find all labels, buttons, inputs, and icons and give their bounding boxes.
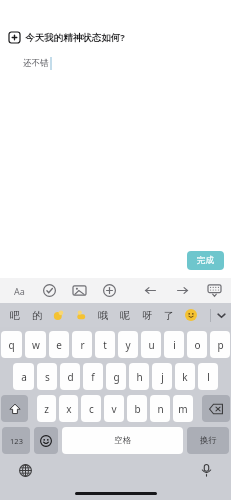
- button[interactable]: z: [37, 395, 56, 422]
- button[interactable]: Undo: [142, 282, 159, 299]
- staticText: 完成: [197, 255, 214, 266]
- button[interactable]: 呢: [114, 303, 136, 327]
- button[interactable]: p: [210, 331, 230, 358]
- button[interactable]: r: [72, 331, 92, 358]
- staticText: g: [113, 370, 120, 384]
- staticText: f: [91, 370, 95, 384]
- button[interactable]: Backspace: [202, 395, 230, 422]
- button[interactable]: m: [173, 395, 193, 422]
- staticText: c: [89, 402, 94, 416]
- staticText: 了: [164, 309, 174, 322]
- button[interactable]: d: [60, 363, 80, 390]
- button[interactable]: h: [129, 363, 149, 390]
- button[interactable]: t: [95, 331, 115, 358]
- button[interactable]: g: [106, 363, 126, 390]
- button[interactable]: b: [127, 395, 147, 422]
- button[interactable]: Prompt: [9, 31, 231, 44]
- staticText: s: [45, 370, 50, 384]
- button[interactable]: l: [198, 363, 218, 390]
- staticText: y: [125, 338, 131, 352]
- staticText: 空格: [114, 435, 131, 446]
- staticText: b: [134, 402, 141, 416]
- button[interactable]: Hide keyboard: [206, 282, 223, 299]
- staticText: x: [66, 402, 72, 416]
- staticText: 哦: [98, 309, 108, 322]
- staticText: a: [21, 370, 27, 384]
- staticText: e: [56, 338, 62, 352]
- staticText: 呢: [120, 309, 130, 322]
- button[interactable]: w: [25, 331, 46, 358]
- button[interactable]: 空格: [62, 427, 183, 454]
- staticText: 呀: [142, 309, 152, 322]
- button[interactable]: u: [141, 331, 161, 358]
- button[interactable]: f: [83, 363, 103, 390]
- button[interactable]: v: [104, 395, 124, 422]
- staticText: 换行: [200, 435, 217, 446]
- button[interactable]: OK hand: [48, 303, 70, 327]
- button[interactable]: k: [175, 363, 195, 390]
- staticText: p: [217, 338, 224, 352]
- button[interactable]: Collapse suggestions: [211, 303, 231, 327]
- button[interactable]: j: [152, 363, 172, 390]
- button[interactable]: 了: [158, 303, 180, 327]
- staticText: 还不错: [23, 58, 49, 69]
- button[interactable]: x: [59, 395, 78, 422]
- staticText: d: [67, 370, 74, 384]
- staticText: 123: [10, 436, 23, 446]
- button[interactable]: n: [150, 395, 170, 422]
- staticText: v: [111, 402, 117, 416]
- button[interactable]: Emoji: [34, 427, 58, 454]
- button[interactable]: c: [81, 395, 101, 422]
- button[interactable]: Change language: [15, 460, 35, 480]
- staticText: i: [173, 338, 176, 352]
- staticText: h: [136, 370, 143, 384]
- button[interactable]: 123: [2, 427, 30, 454]
- staticText: n: [157, 402, 164, 416]
- staticText: l: [207, 370, 210, 384]
- staticText: q: [8, 338, 15, 352]
- button[interactable]: a: [13, 363, 34, 390]
- staticText: o: [194, 338, 201, 352]
- button[interactable]: Shift: [1, 395, 28, 422]
- button[interactable]: Voice input: [196, 460, 216, 480]
- button[interactable]: s: [37, 363, 57, 390]
- button[interactable]: y: [118, 331, 138, 358]
- button[interactable]: 换行: [187, 427, 229, 454]
- button[interactable]: Add attachment: [101, 282, 118, 299]
- other: Prompt: [9, 32, 20, 43]
- staticText: t: [103, 338, 107, 352]
- staticText: r: [80, 338, 85, 352]
- button[interactable]: Smiley: [180, 303, 202, 327]
- button[interactable]: i: [164, 331, 184, 358]
- button[interactable]: 还不错: [23, 57, 231, 70]
- staticText: 的: [32, 309, 42, 322]
- button[interactable]: Redo: [174, 282, 191, 299]
- staticText: k: [182, 370, 188, 384]
- button[interactable]: 呀: [136, 303, 158, 327]
- button[interactable]: 完成: [187, 251, 224, 270]
- button[interactable]: 吧: [4, 303, 26, 327]
- button[interactable]: Text style: [11, 282, 28, 299]
- staticText: 吧: [10, 309, 20, 322]
- staticText: z: [44, 402, 49, 416]
- button[interactable]: q: [1, 331, 22, 358]
- button[interactable]: o: [187, 331, 207, 358]
- staticText: Aa: [14, 285, 25, 297]
- staticText: m: [178, 402, 188, 416]
- staticText: w: [32, 338, 40, 352]
- staticText: u: [148, 338, 155, 352]
- staticText: j: [161, 370, 164, 384]
- staticText: 今天我的精神状态如何?: [25, 31, 125, 44]
- button[interactable]: e: [49, 331, 69, 358]
- button[interactable]: Checklist: [41, 282, 58, 299]
- button[interactable]: 哦: [92, 303, 114, 327]
- button[interactable]: Thumbs up: [70, 303, 92, 327]
- button[interactable]: Insert photo: [71, 282, 88, 299]
- button[interactable]: 的: [26, 303, 48, 327]
